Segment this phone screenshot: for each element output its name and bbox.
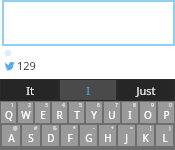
staticText: Y xyxy=(91,108,97,122)
staticText: U xyxy=(108,108,116,122)
staticText: = xyxy=(130,125,133,132)
button[interactable]: 5 xyxy=(69,102,84,123)
staticText: I xyxy=(86,83,90,98)
button[interactable]: It xyxy=(1,80,58,100)
staticText: 4 xyxy=(62,102,65,109)
staticText: G xyxy=(85,131,93,145)
staticText: 129 xyxy=(17,58,36,73)
staticText: I xyxy=(128,108,132,122)
button[interactable]: 6 xyxy=(86,102,102,123)
staticText: H xyxy=(104,131,112,145)
button[interactable]: & xyxy=(42,125,59,146)
button[interactable]: 7 xyxy=(104,102,120,123)
staticText: Just xyxy=(136,83,156,98)
button[interactable]: ( xyxy=(137,125,154,146)
button[interactable]: @ xyxy=(2,125,20,146)
staticText: W xyxy=(21,108,31,122)
staticText: D xyxy=(47,131,55,145)
other: Twitter xyxy=(5,61,15,70)
staticText: F xyxy=(67,131,73,145)
button[interactable]: * xyxy=(61,125,78,146)
button[interactable]: # xyxy=(22,125,40,146)
staticText: J xyxy=(125,131,128,145)
staticText: A xyxy=(8,131,15,145)
staticText: 1 xyxy=(11,102,14,109)
staticText: S xyxy=(28,131,34,145)
staticText: - xyxy=(93,125,95,132)
staticText: @ xyxy=(13,125,18,132)
button[interactable]: 4 xyxy=(52,102,67,123)
staticText: E xyxy=(40,108,46,122)
button[interactable]: 3 xyxy=(35,102,50,123)
button[interactable]: 9 xyxy=(140,102,156,123)
button[interactable]: 8 xyxy=(122,102,138,123)
staticText: O xyxy=(144,108,152,122)
button[interactable]: Just xyxy=(118,80,174,100)
button[interactable]: + xyxy=(99,125,116,146)
staticText: L xyxy=(162,131,168,145)
staticText: 5 xyxy=(79,102,82,109)
button[interactable]: - xyxy=(80,125,97,146)
staticText: 7 xyxy=(115,102,118,109)
staticText: 8 xyxy=(133,102,136,109)
staticText: 0 xyxy=(169,102,172,109)
staticText: P xyxy=(163,108,170,122)
staticText: # xyxy=(34,125,38,132)
button[interactable]: 1 xyxy=(1,102,16,123)
button[interactable]: 2 xyxy=(18,102,33,123)
staticText: It xyxy=(26,83,34,98)
staticText: 3 xyxy=(45,102,48,109)
button[interactable]: I xyxy=(60,80,116,100)
staticText: & xyxy=(53,125,57,132)
button[interactable] xyxy=(2,0,175,46)
staticText: R xyxy=(56,108,63,122)
staticText: 9 xyxy=(151,102,154,109)
staticText: K xyxy=(142,131,149,145)
staticText: + xyxy=(111,125,114,132)
button[interactable]: Twitter xyxy=(5,58,36,73)
button[interactable]: 0 xyxy=(158,102,174,123)
staticText: 6 xyxy=(97,102,100,109)
staticText: ( xyxy=(150,125,152,132)
button[interactable]: = xyxy=(118,125,135,146)
staticText: * xyxy=(73,125,76,132)
staticText: Q xyxy=(5,108,13,122)
staticText: 2 xyxy=(28,102,31,109)
staticText: T xyxy=(74,108,80,122)
staticText: ) xyxy=(169,125,171,132)
button[interactable]: ) xyxy=(156,125,173,146)
